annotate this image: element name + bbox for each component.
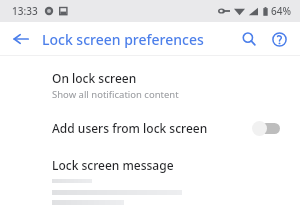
staticText: Lock screen message	[52, 157, 174, 173]
staticText: Lock screen preferences	[42, 30, 204, 49]
staticText: 13:33	[12, 4, 38, 18]
button[interactable]: Add users from lock screen	[0, 107, 300, 149]
staticText: 64%	[271, 4, 291, 18]
button[interactable]: Help	[264, 24, 294, 54]
staticText: Add users from lock screen	[52, 120, 208, 136]
button[interactable]: Back	[6, 24, 36, 54]
button[interactable]: On lock screen	[0, 64, 300, 107]
button[interactable]: Search	[234, 24, 264, 54]
staticText: Show all notification content	[52, 88, 179, 101]
staticText: On lock screen	[52, 70, 137, 86]
button[interactable]: Lock screen message	[0, 149, 300, 205]
